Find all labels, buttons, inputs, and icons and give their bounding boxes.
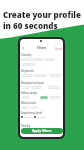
button[interactable] [30, 106, 38, 109]
button[interactable] [21, 116, 33, 118]
staticText: Work mode [21, 101, 37, 105]
button[interactable] [45, 58, 55, 61]
staticText: in 60 seconds [3, 20, 58, 31]
staticText: Country [21, 53, 32, 57]
staticText: Employment type [21, 81, 45, 85]
button[interactable] [40, 96, 48, 99]
button[interactable] [21, 58, 34, 61]
button[interactable] [34, 116, 46, 118]
button[interactable]: Apply filters [21, 128, 63, 134]
staticText: Filters [37, 46, 47, 50]
button[interactable] [21, 106, 29, 109]
button[interactable] [21, 63, 35, 66]
staticText: Create your profile [3, 9, 81, 20]
staticText: Apply filters [32, 129, 52, 133]
button[interactable] [21, 96, 30, 99]
button[interactable] [34, 74, 47, 77]
staticText: Keywords [21, 69, 34, 73]
button[interactable] [21, 86, 30, 89]
button[interactable] [49, 74, 61, 77]
button[interactable] [34, 58, 44, 61]
staticText: Salary range [21, 91, 38, 95]
staticText: Sort by [21, 124, 31, 128]
button[interactable] [31, 86, 42, 89]
button[interactable] [48, 86, 60, 89]
button[interactable]: Reset [55, 47, 63, 51]
button[interactable] [21, 74, 33, 77]
staticText: Reset [55, 47, 63, 51]
button[interactable]: Close [21, 46, 25, 50]
button[interactable] [49, 96, 61, 99]
staticText: Experience level [21, 111, 43, 115]
